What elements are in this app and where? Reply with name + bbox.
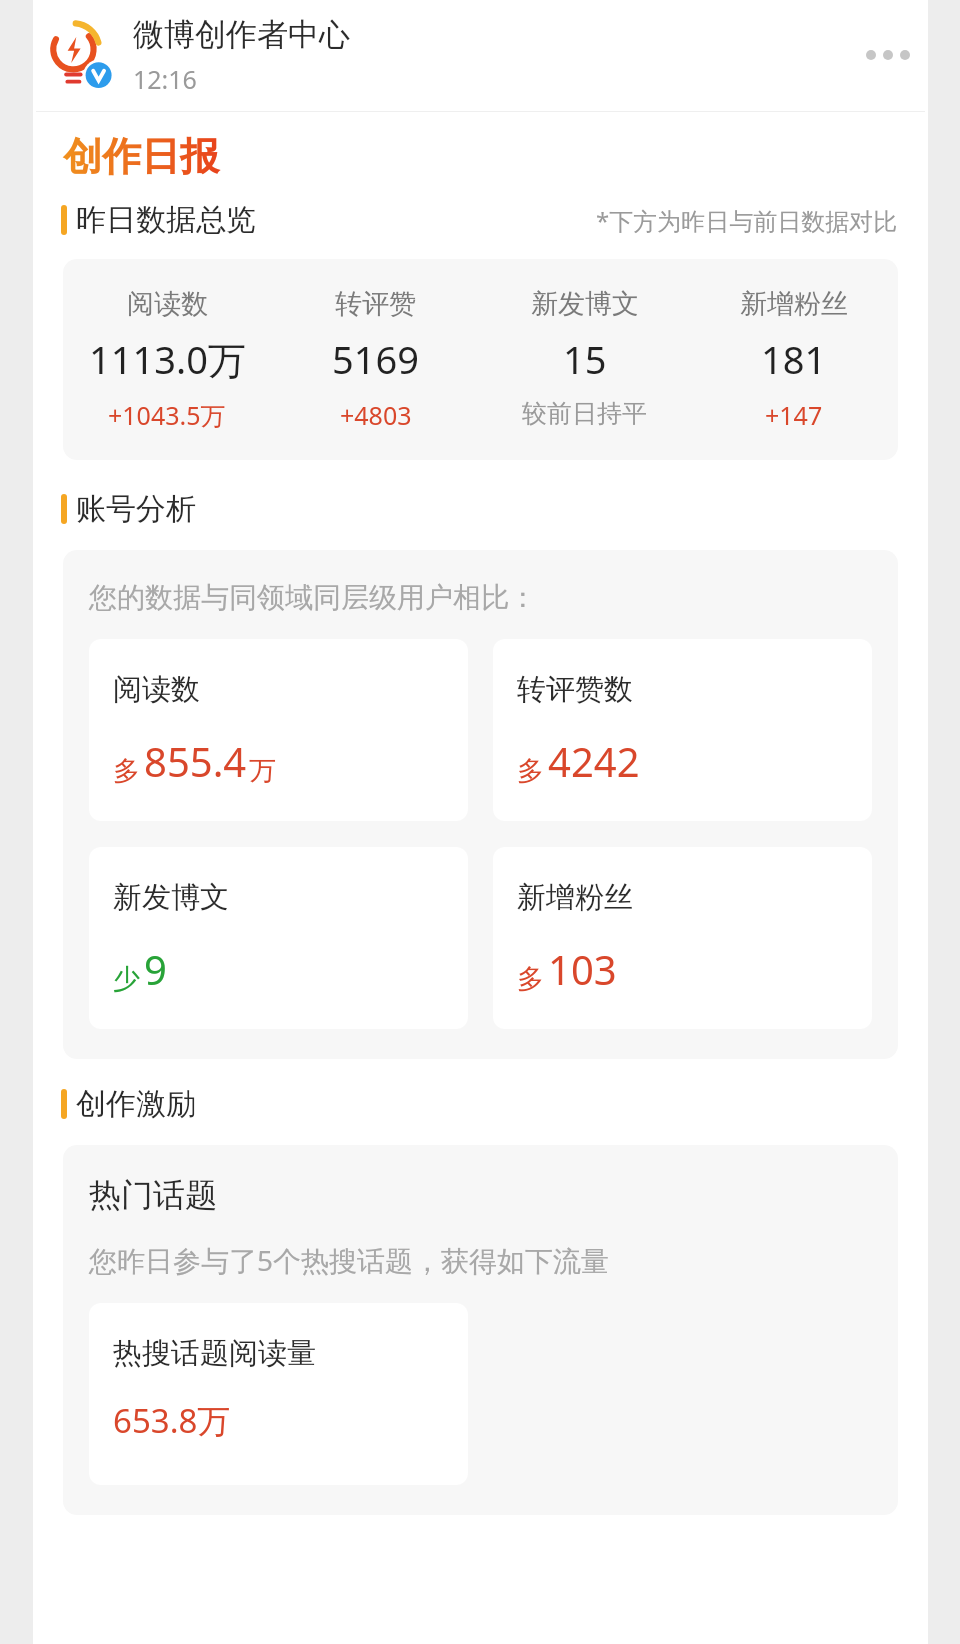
staticText: 新发博文	[531, 287, 639, 321]
staticText: 多	[113, 754, 140, 788]
staticText: 阅读数	[127, 287, 208, 321]
button[interactable]: 转评赞数	[493, 639, 872, 821]
staticText: +147	[765, 398, 823, 432]
button[interactable]: 阅读数	[89, 639, 468, 821]
button[interactable]: 新增粉丝	[493, 847, 872, 1029]
staticText: *下方为昨日与前日数据对比	[596, 204, 898, 237]
staticText: 微博创作者中心	[133, 15, 350, 54]
staticText: 15	[563, 333, 607, 385]
staticText: 您昨日参与了5个热搜话题，获得如下流量	[89, 1241, 610, 1279]
staticText: 新增粉丝	[517, 879, 633, 916]
staticText: 103	[548, 942, 617, 996]
staticText: 账号分析	[76, 490, 196, 528]
staticText: 创作日报	[63, 132, 219, 181]
button[interactable]: 新增粉丝	[689, 287, 898, 432]
staticText: 多	[517, 962, 544, 996]
staticText: 多	[517, 754, 544, 788]
button[interactable]: 新发博文	[480, 287, 689, 429]
staticText: 181	[761, 333, 827, 385]
staticText: 热搜话题阅读量	[113, 1335, 316, 1372]
staticText: +1043.5万	[108, 398, 226, 432]
staticText: 新增粉丝	[740, 287, 848, 321]
staticText: 12:16	[133, 62, 197, 96]
staticText: 昨日数据总览	[76, 201, 256, 239]
button[interactable]: More options	[858, 25, 918, 85]
staticText: 855.4	[144, 734, 247, 788]
staticText: 转评赞	[335, 287, 416, 321]
staticText: 转评赞数	[517, 671, 633, 708]
staticText: 您的数据与同领域同层级用户相比：	[89, 580, 537, 615]
staticText: 阅读数	[113, 671, 200, 708]
staticText: 1113.0万	[89, 333, 246, 385]
button[interactable]: 阅读数	[63, 287, 271, 432]
staticText: +4803	[340, 398, 412, 432]
staticText: 4242	[548, 734, 640, 788]
staticText: 热门话题	[89, 1175, 217, 1215]
button[interactable]: 转评赞	[271, 287, 480, 432]
staticText: 653.8万	[113, 1398, 231, 1443]
staticText: 万	[249, 754, 276, 788]
staticText: 新发博文	[113, 879, 229, 916]
staticText: 创作激励	[76, 1085, 196, 1123]
staticText: 9	[144, 942, 167, 996]
button[interactable]: 热搜话题阅读量	[89, 1303, 468, 1485]
button[interactable]: 新发博文	[89, 847, 468, 1029]
staticText: 5169	[332, 333, 419, 385]
staticText: 少	[113, 962, 140, 996]
staticText: 较前日持平	[522, 398, 647, 429]
